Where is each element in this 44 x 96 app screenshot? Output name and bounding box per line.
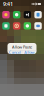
button[interactable]: Instagram [13,22,20,30]
button[interactable]: Phone [24,22,31,30]
staticText: Allow [24,49,34,55]
staticText: 9:41 [3,0,13,8]
button[interactable]: TikTok [24,11,31,18]
button[interactable]: Messaging app [13,11,20,18]
button[interactable]: Photo app [2,11,10,18]
staticText: Cancel [9,49,21,55]
button[interactable]: Allow [22,50,36,54]
button[interactable]: Cancel [7,50,22,54]
button[interactable]: Notes [2,22,10,30]
button[interactable]: Notes app [34,11,42,18]
button[interactable]: Mail [34,22,42,30]
staticText: Allow Paste [12,44,32,49]
